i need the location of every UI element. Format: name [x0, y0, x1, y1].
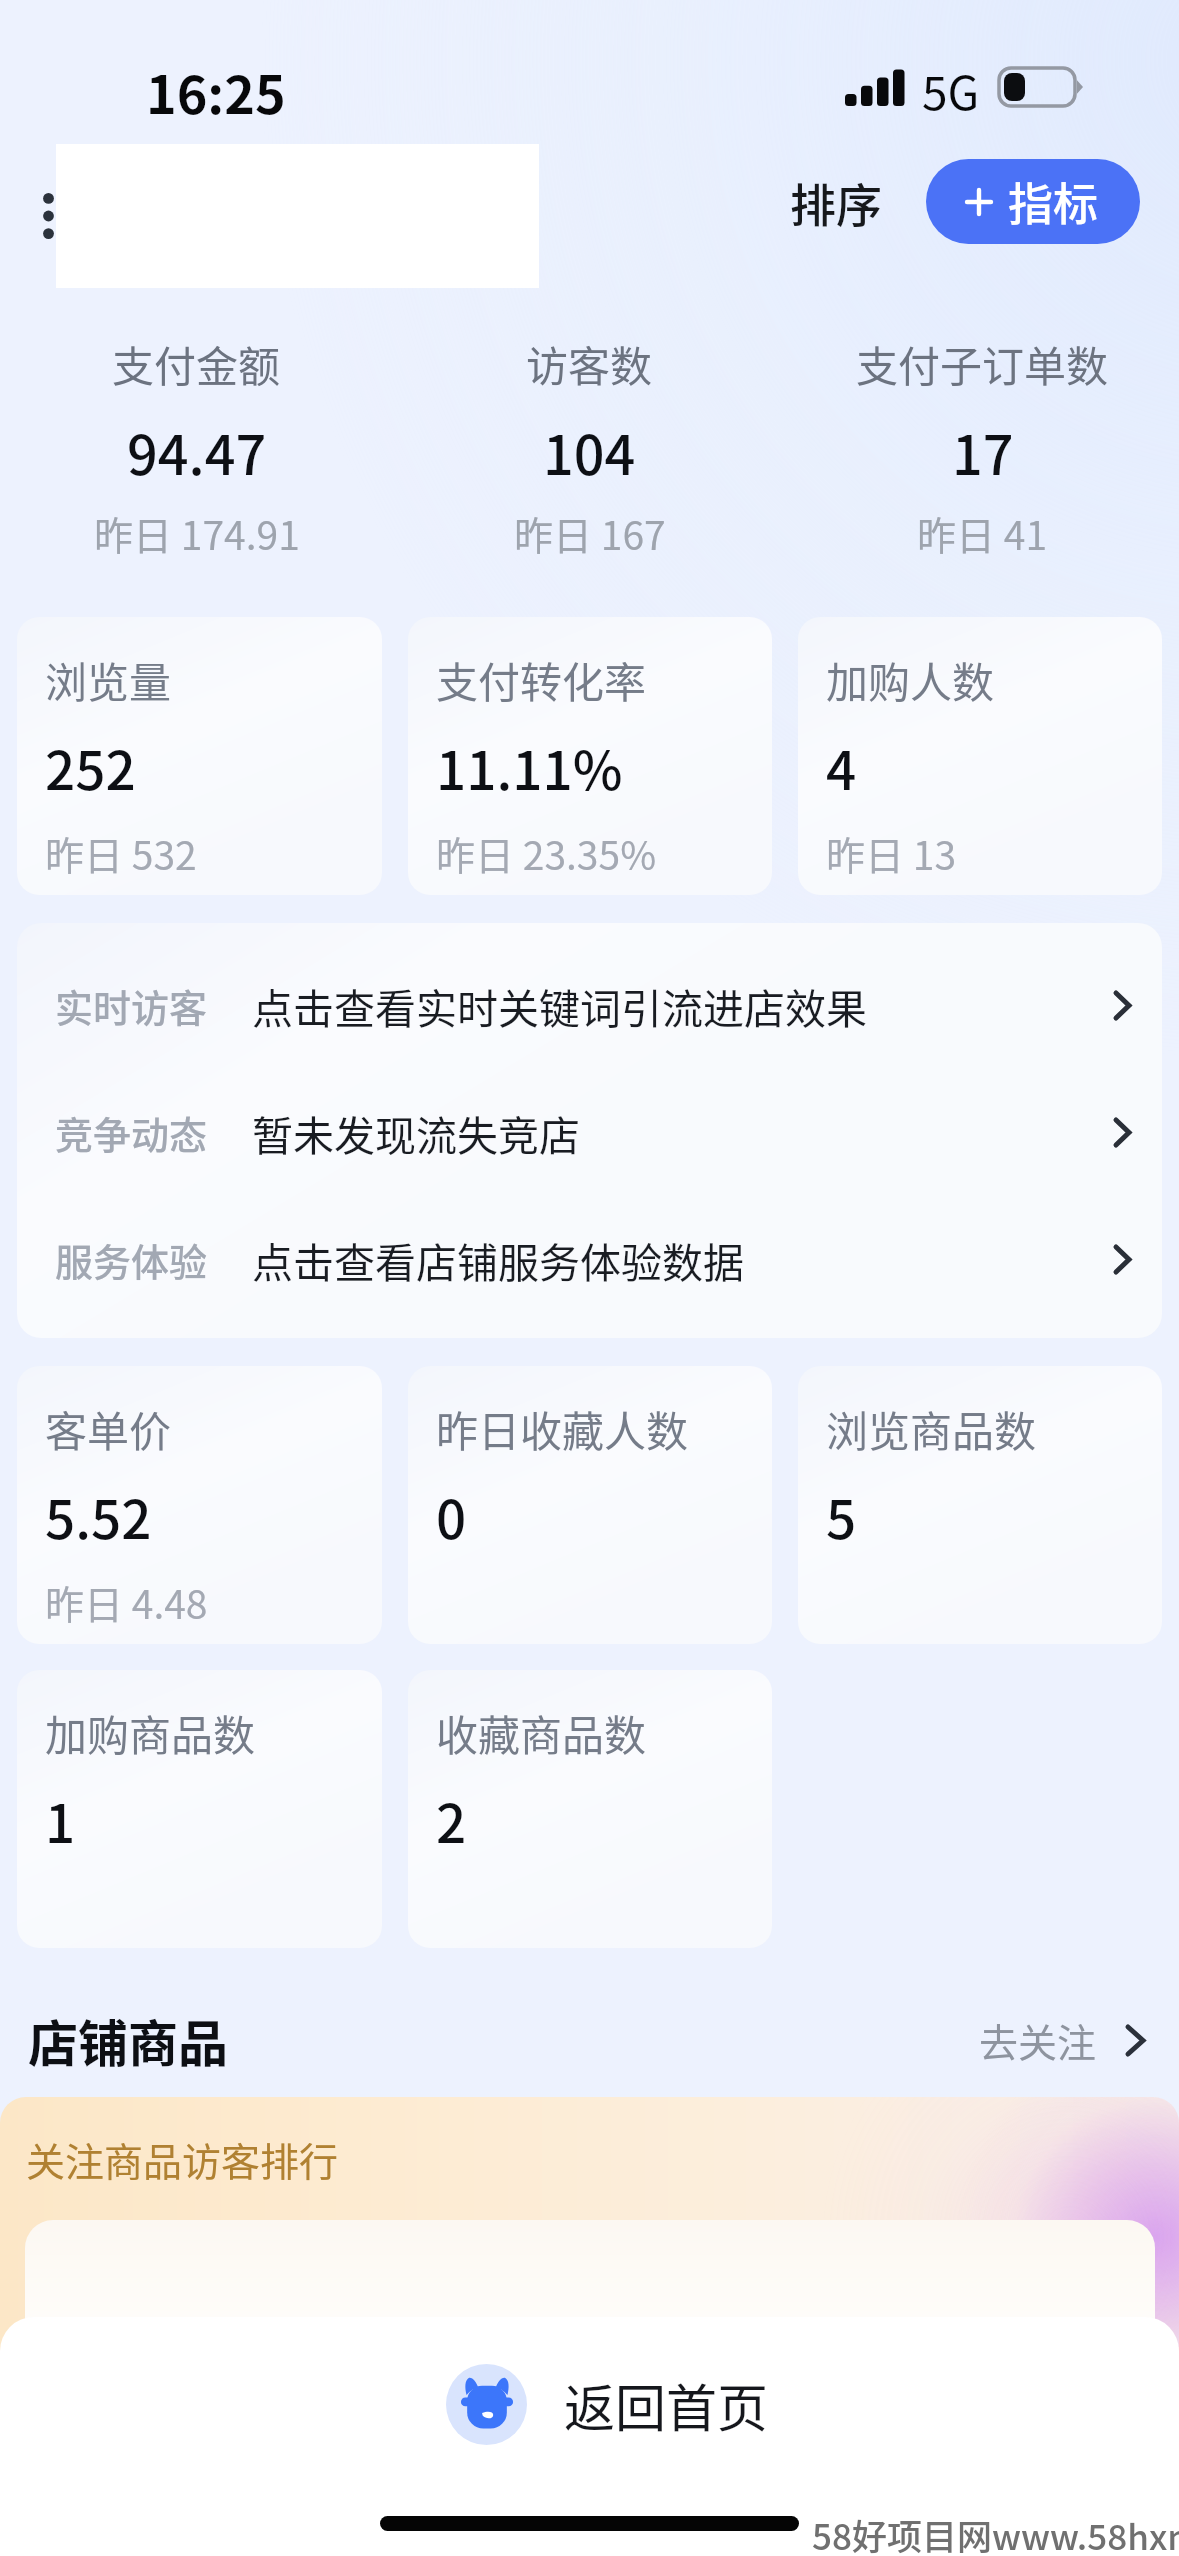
staticText: 收藏商品数: [436, 1702, 647, 1763]
staticText: 加购商品数: [45, 1702, 256, 1763]
staticText: 加购人数: [826, 649, 995, 710]
staticText: 昨日 167: [514, 505, 666, 561]
staticText: 实时访客: [55, 978, 208, 1033]
staticText: 支付子订单数: [856, 333, 1109, 394]
staticText: 排序: [790, 169, 882, 236]
staticText: 关注商品访客排行: [26, 2131, 339, 2187]
staticText: 昨日收藏人数: [436, 1398, 689, 1459]
staticText: 支付转化率: [436, 649, 647, 710]
staticText: 2: [436, 1782, 467, 1859]
staticText: 去关注: [979, 2012, 1097, 2068]
staticText: 竞争动态: [55, 1105, 208, 1160]
button[interactable]: 浏览量: [17, 617, 382, 895]
button[interactable]: 浏览商品数: [798, 1366, 1162, 1644]
button[interactable]: More options: [18, 166, 78, 266]
button[interactable]: 服务体验: [17, 1196, 1162, 1323]
staticText: 昨日 174.91: [94, 505, 300, 561]
button[interactable]: 访客数: [393, 333, 786, 561]
staticText: 5: [826, 1478, 857, 1555]
staticText: 17: [952, 412, 1014, 490]
staticText: 昨日 41: [917, 505, 1048, 561]
staticText: 昨日 23.35%: [436, 825, 657, 881]
button[interactable]: 实时访客: [17, 942, 1162, 1069]
staticText: 11.11%: [436, 729, 623, 806]
staticText: 返回首页: [564, 2368, 769, 2442]
staticText: 支付金额: [112, 333, 281, 394]
button[interactable]: 加购人数: [798, 617, 1162, 895]
staticText: 104: [543, 412, 636, 490]
button[interactable]: 返回首页: [446, 2364, 769, 2445]
staticText: 客单价: [45, 1398, 172, 1459]
staticText: 浏览商品数: [826, 1398, 1037, 1459]
staticText: 浏览量: [45, 649, 172, 710]
staticText: 服务体验: [55, 1232, 208, 1287]
button[interactable]: 支付转化率: [408, 617, 772, 895]
button[interactable]: 排序: [768, 160, 904, 244]
staticText: 5G: [922, 57, 980, 124]
button[interactable]: 指标: [926, 159, 1140, 244]
staticText: 昨日 4.48: [45, 1574, 208, 1630]
staticText: 252: [45, 729, 136, 806]
staticText: 暂未发现流失竞店: [252, 1103, 580, 1162]
staticText: 4: [826, 729, 857, 806]
button[interactable]: 去关注: [979, 2000, 1144, 2080]
staticText: 16:25: [146, 54, 286, 129]
button[interactable]: 支付子订单数: [786, 333, 1179, 561]
staticText: 点击查看实时关键词引流进店效果: [252, 976, 867, 1035]
button[interactable]: 收藏商品数: [408, 1670, 772, 1948]
staticText: 点击查看店铺服务体验数据: [252, 1230, 744, 1289]
staticText: 94.47: [127, 412, 267, 490]
staticText: 1: [45, 1782, 76, 1859]
staticText: 5.52: [45, 1478, 152, 1555]
staticText: 访客数: [526, 333, 653, 394]
button[interactable]: 加购商品数: [17, 1670, 382, 1948]
button[interactable]: 昨日收藏人数: [408, 1366, 772, 1644]
staticText: 指标: [1008, 169, 1099, 234]
staticText: 0: [436, 1478, 467, 1555]
staticText: 昨日 13: [826, 825, 957, 881]
button[interactable]: 竞争动态: [17, 1069, 1162, 1196]
button[interactable]: 支付金额: [0, 333, 393, 561]
button[interactable]: 客单价: [17, 1366, 382, 1644]
staticText: 店铺商品: [28, 2004, 228, 2076]
staticText: 58好项目网www.58hxm.com: [812, 2509, 1179, 2556]
staticText: 昨日 532: [45, 825, 197, 881]
